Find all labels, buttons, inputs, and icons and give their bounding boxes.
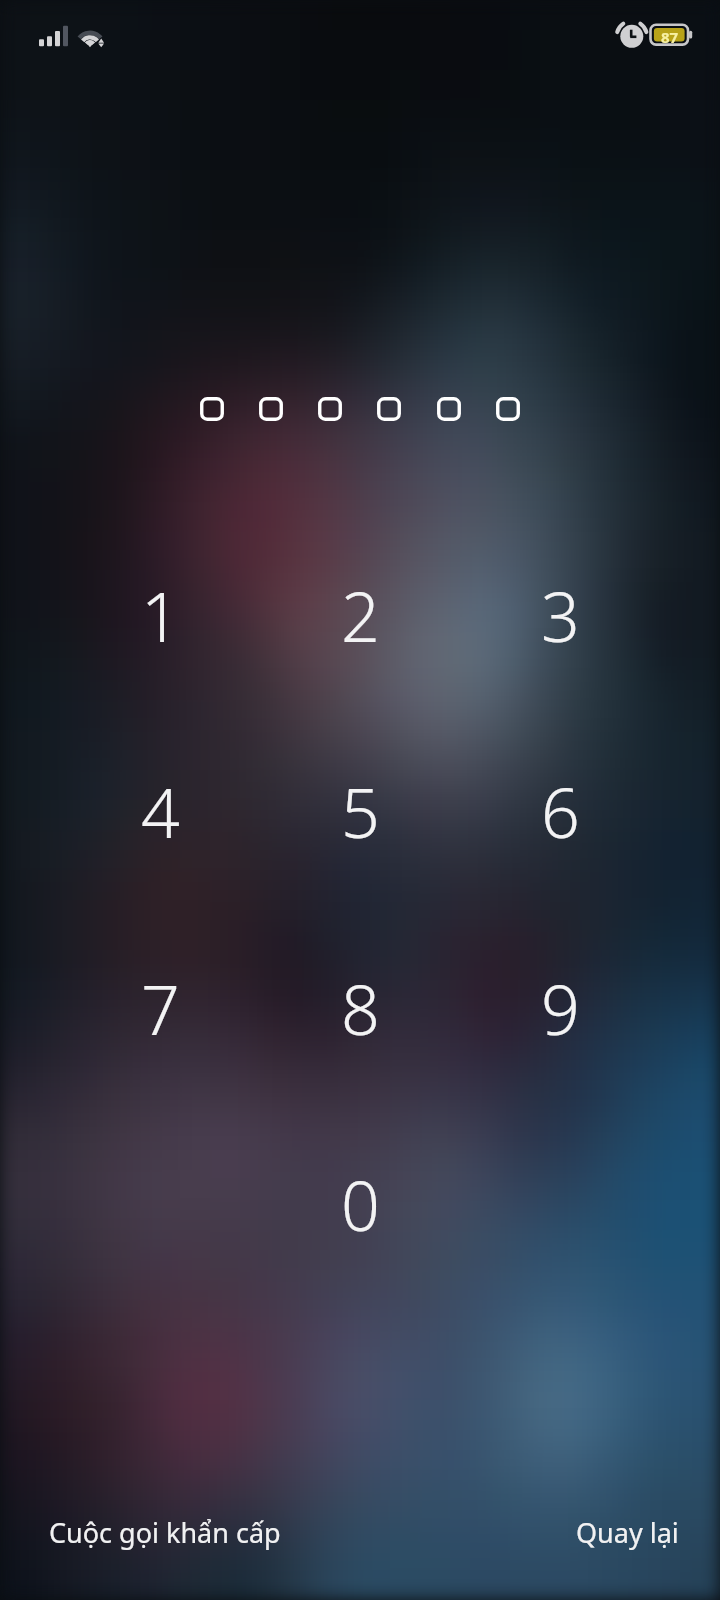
staticText: 9	[541, 962, 580, 1055]
staticText: 7	[141, 962, 180, 1055]
staticText: Quay lại	[576, 1514, 679, 1551]
button[interactable]: Quay lại	[544, 1500, 711, 1565]
staticText: 5	[341, 765, 380, 858]
button[interactable]: 9	[498, 946, 622, 1070]
button[interactable]: 1	[98, 553, 222, 677]
button[interactable]: 3	[498, 553, 622, 677]
staticText: Cuộc gọi khẩn cấp	[49, 1514, 281, 1551]
staticText: 8	[341, 962, 380, 1055]
button[interactable]: Cuộc gọi khẩn cấp	[17, 1500, 313, 1565]
staticText: 87	[657, 27, 682, 45]
button[interactable]: 0	[298, 1142, 422, 1266]
staticText: 2	[341, 569, 380, 662]
staticText: 6	[541, 765, 580, 858]
button[interactable]: 5	[298, 749, 422, 873]
button[interactable]: 7	[98, 946, 222, 1070]
button[interactable]: 4	[98, 749, 222, 873]
staticText: 0	[341, 1158, 380, 1251]
staticText: 4	[141, 765, 180, 858]
staticText: 1	[141, 569, 180, 662]
button[interactable]: 8	[298, 946, 422, 1070]
button[interactable]: 2	[298, 553, 422, 677]
button[interactable]: 6	[498, 749, 622, 873]
other: PIN entry	[190, 389, 530, 429]
staticText: 3	[541, 569, 580, 662]
